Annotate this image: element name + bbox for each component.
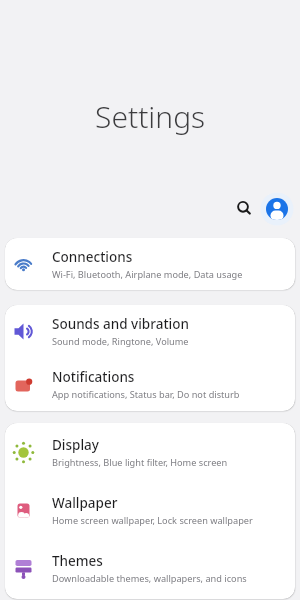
button[interactable]: Sounds and vibration (5, 305, 295, 358)
staticText: Connections (52, 248, 133, 266)
staticText: Wi-Fi, Bluetooth, Airplane mode, Data us… (52, 268, 243, 281)
button[interactable] (260, 192, 294, 226)
button[interactable]: Notifications (5, 358, 295, 411)
staticText: Home screen wallpaper, Lock screen wallp… (52, 514, 253, 527)
button[interactable]: Display (5, 423, 295, 481)
staticText: Sounds and vibration (52, 315, 189, 333)
staticText: Display (52, 436, 99, 454)
staticText: Sound mode, Ringtone, Volume (52, 335, 189, 348)
staticText: Settings (95, 96, 206, 137)
staticText: App notifications, Status bar, Do not di… (52, 388, 240, 401)
staticText: Brightness, Blue light filter, Home scre… (52, 456, 228, 469)
button[interactable] (232, 196, 258, 222)
staticText: Notifications (52, 368, 135, 386)
button[interactable]: Wallpaper (5, 481, 295, 539)
button[interactable]: Themes (5, 539, 295, 597)
button[interactable]: Connections (5, 238, 295, 290)
staticText: Wallpaper (52, 494, 118, 512)
staticText: Themes (52, 552, 103, 570)
staticText: Downloadable themes, wallpapers, and ico… (52, 572, 247, 585)
